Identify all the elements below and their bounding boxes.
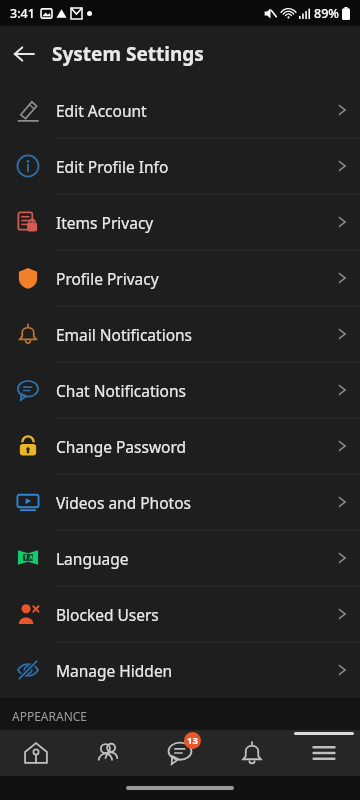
button[interactable]: People [72, 730, 144, 776]
button[interactable]: Menu [288, 730, 360, 776]
staticText: Language [56, 548, 324, 569]
button[interactable]: Chats [144, 730, 216, 776]
staticText: Manage Hidden [56, 660, 324, 681]
button[interactable]: Home [0, 730, 72, 776]
button[interactable]: Chat Notifications [0, 362, 360, 418]
button[interactable]: Profile Privacy [0, 250, 360, 306]
button[interactable]: Videos and Photos [0, 474, 360, 530]
staticText: Items Privacy [56, 212, 324, 233]
button[interactable]: Change Password [0, 418, 360, 474]
staticText: Chat Notifications [56, 380, 324, 401]
staticText: Edit Account [56, 100, 324, 121]
staticText: Profile Privacy [56, 268, 324, 289]
staticText: APPEARANCE [12, 708, 88, 724]
button[interactable]: Back [0, 30, 48, 78]
staticText: 13 [187, 734, 198, 747]
staticText: Email Notifications [56, 324, 324, 345]
staticText: Edit Profile Info [56, 156, 324, 177]
staticText: Change Password [56, 436, 324, 457]
staticText: Blocked Users [56, 604, 324, 625]
button[interactable]: Notifications [216, 730, 288, 776]
staticText: 89% [314, 5, 339, 22]
button[interactable]: Manage Hidden [0, 642, 360, 698]
button[interactable]: Edit Account [0, 82, 360, 138]
staticText: 3:41 [10, 5, 35, 22]
button[interactable]: Edit Profile Info [0, 138, 360, 194]
staticText: Videos and Photos [56, 492, 324, 513]
button[interactable]: Items Privacy [0, 194, 360, 250]
button[interactable]: Blocked Users [0, 586, 360, 642]
staticText: System Settings [52, 41, 204, 67]
button[interactable]: Email Notifications [0, 306, 360, 362]
button[interactable]: Language [0, 530, 360, 586]
